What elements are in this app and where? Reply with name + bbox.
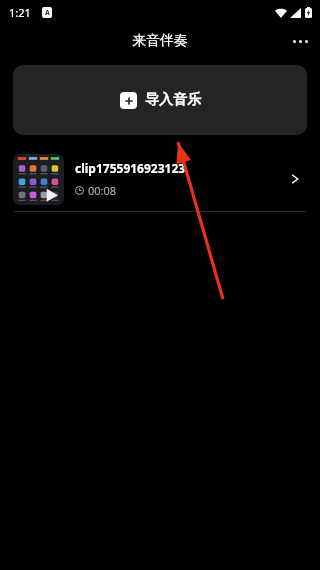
staticText: 导入音乐 [145, 91, 201, 109]
staticText: 00:08 [88, 183, 117, 198]
staticText: clip1755916923123 [75, 160, 186, 176]
button[interactable]: More options [281, 30, 320, 53]
button[interactable]: 导入音乐 [13, 65, 307, 135]
staticText: A [45, 8, 50, 18]
staticText: 1:21 [9, 5, 31, 20]
staticText: 来音伴奏 [132, 32, 188, 50]
other: Open [283, 167, 307, 191]
button[interactable]: clip1755916923123 [0, 147, 320, 211]
